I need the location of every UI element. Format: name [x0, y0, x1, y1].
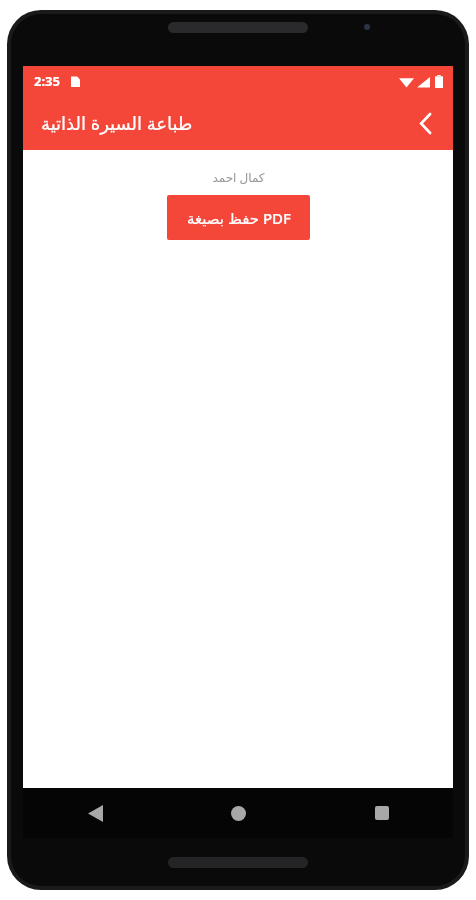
button[interactable]: Recent apps [310, 788, 453, 838]
staticText: كمال احمد [212, 169, 265, 185]
staticText: حفظ بصيغة PDF [187, 208, 291, 228]
button[interactable]: حفظ بصيغة PDF [167, 195, 310, 240]
staticText: طباعة السيرة الذاتية [41, 111, 193, 136]
staticText: 2:35 [34, 72, 60, 90]
button[interactable]: Home [167, 788, 310, 838]
button[interactable]: Back [23, 788, 167, 838]
button[interactable]: Back [401, 99, 449, 147]
